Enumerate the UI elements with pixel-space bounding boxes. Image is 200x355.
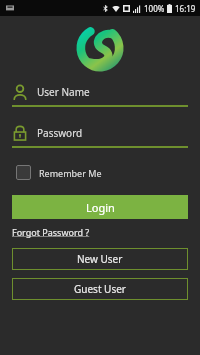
staticText: Remember Me	[39, 167, 102, 179]
button[interactable]: Forgot Password ?	[12, 225, 90, 239]
button[interactable]: Login	[12, 195, 188, 219]
staticText: Forgot Password ?	[12, 226, 90, 238]
button[interactable]: Password	[12, 125, 188, 148]
button[interactable]: Remember Me	[14, 162, 104, 183]
staticText: User Name	[37, 85, 90, 99]
staticText: Guest User	[74, 282, 126, 296]
button[interactable]: New User	[12, 248, 188, 270]
staticText: Password	[37, 126, 83, 140]
staticText: Login	[86, 200, 115, 215]
button[interactable]: Guest User	[12, 278, 188, 300]
staticText: 100%	[144, 3, 165, 14]
button[interactable]: User Name	[12, 84, 188, 107]
staticText: 16:19	[175, 3, 196, 14]
staticText: New User	[77, 252, 123, 266]
